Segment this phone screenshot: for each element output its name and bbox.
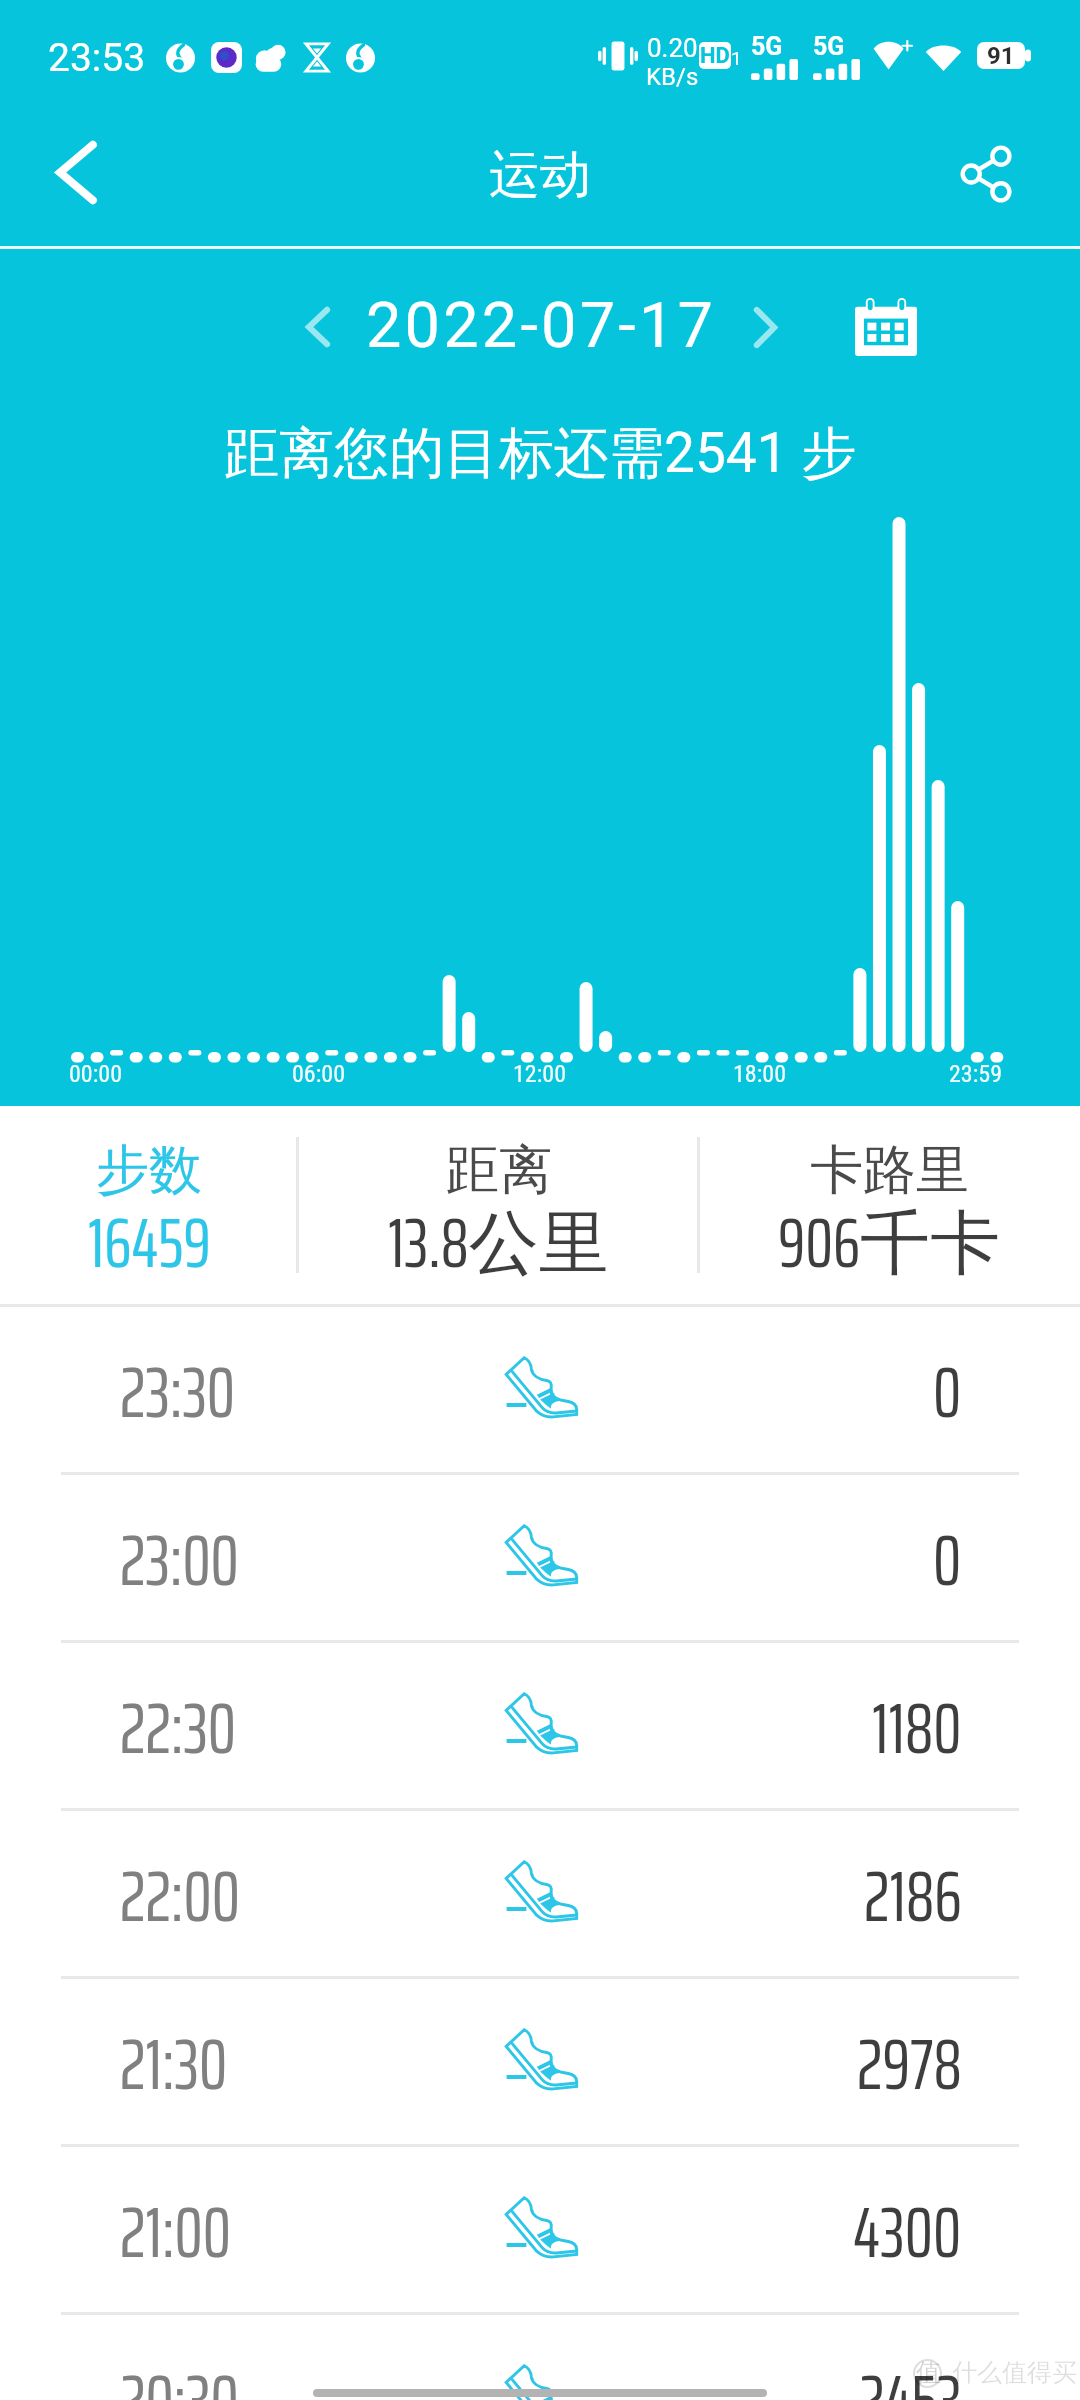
staticText: 1180 [872,1672,962,1784]
staticText: 运动 [489,143,591,207]
staticText: 91 [987,42,1015,69]
staticText: 0.20 [647,33,698,63]
staticText: 距离您的目标还需2541 步 [224,419,857,488]
staticText: 18:00 [733,1060,786,1088]
staticText: 2978 [857,2008,962,2120]
staticText: 22:30 [120,1672,237,1784]
staticText: 13.8公里 [388,1188,609,1298]
button[interactable]: 23:00 [0,1475,1080,1643]
button[interactable]: 23:30 [0,1307,1080,1475]
button[interactable]: Next day [725,287,805,367]
button[interactable]: Share [935,124,1035,224]
staticText: 06:00 [292,1060,345,1088]
staticText: 0 [933,1504,962,1616]
staticText: 5G [813,32,845,61]
button[interactable]: 21:30 [0,1979,1080,2147]
staticText: 2186 [864,1840,962,1952]
staticText: 23:53 [48,35,146,81]
staticText: 2022-07-17 [366,289,717,363]
staticText: 值 [916,2357,941,2388]
button[interactable]: 22:00 [0,1811,1080,1979]
staticText: 23:00 [120,1504,239,1616]
staticText: KB/s [646,63,699,91]
staticText: 1 [731,47,742,69]
button[interactable]: 22:30 [0,1643,1080,1811]
staticText: 21:30 [120,2008,228,2120]
staticText: 距离 [446,1137,552,1204]
staticText: 00:00 [69,1060,122,1088]
button[interactable]: Back [26,122,126,222]
staticText: 23:59 [949,1060,1002,1088]
staticText: HD [700,43,730,69]
staticText: 2453 [859,2344,962,2400]
staticText: 0 [933,1336,962,1448]
staticText: 22:00 [120,1840,240,1952]
staticText: 16459 [88,1188,211,1298]
staticText: 什么值得买 [952,2357,1077,2388]
staticText: 4300 [853,2176,962,2288]
button[interactable]: Previous day [278,287,358,367]
staticText: 20:30 [120,2344,239,2400]
staticText: 12:00 [513,1060,566,1088]
button[interactable]: 20:30 [0,2315,1080,2400]
button[interactable]: 21:00 [0,2147,1080,2315]
staticText: 5G [751,32,783,61]
button[interactable]: Calendar [846,287,926,367]
staticText: 21:00 [120,2176,231,2288]
staticText: 卡路里 [810,1137,969,1204]
staticText: 23:30 [120,1336,235,1448]
staticText: 906千卡 [778,1188,1001,1298]
staticText: 步数 [96,1137,202,1204]
